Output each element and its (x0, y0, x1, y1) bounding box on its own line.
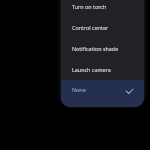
button[interactable]: Control center (61, 17, 144, 38)
staticText: Notification shade (72, 45, 119, 52)
button[interactable]: Turn on torch (61, 0, 144, 17)
button[interactable]: None (61, 80, 144, 107)
staticText: Control center (72, 24, 109, 31)
button[interactable]: Launch camera (61, 59, 144, 80)
button[interactable]: Notification shade (61, 38, 144, 59)
staticText: None (72, 86, 86, 93)
staticText: Turn on torch (72, 3, 107, 10)
staticText: Launch camera (72, 66, 111, 73)
